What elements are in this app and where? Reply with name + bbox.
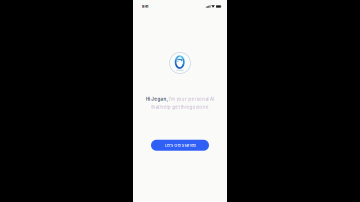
button[interactable]: Let's Get Started xyxy=(151,140,209,151)
staticText: 9:41 xyxy=(142,4,149,9)
staticText: Hi Jegan, xyxy=(146,96,168,102)
staticText: I'm your personal AI xyxy=(169,96,214,102)
staticText: that help get things done xyxy=(151,104,209,110)
staticText: Let's Get Started xyxy=(165,143,195,148)
